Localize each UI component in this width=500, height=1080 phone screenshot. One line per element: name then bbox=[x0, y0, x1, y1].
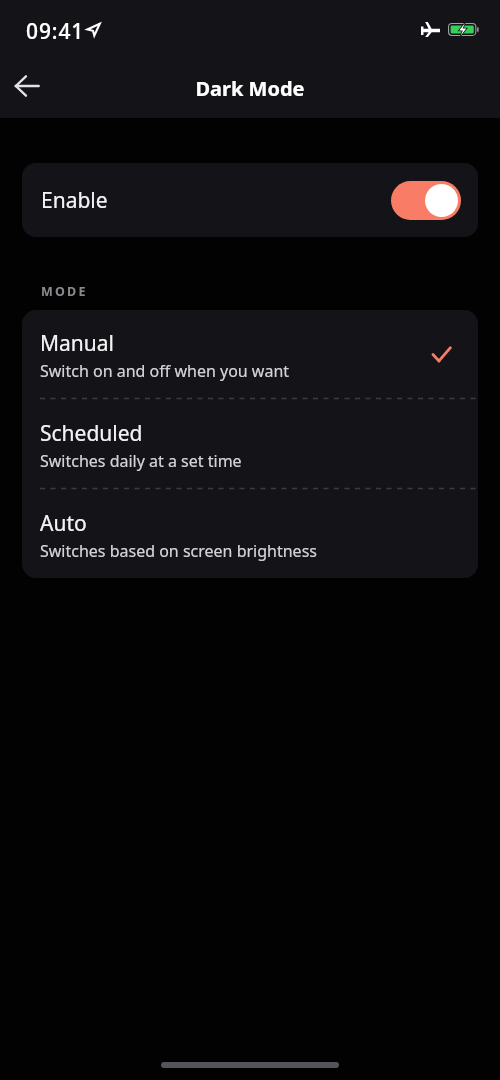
button[interactable]: Manual bbox=[22, 310, 478, 398]
staticText: Dark Mode bbox=[195, 75, 305, 102]
button[interactable]: Back bbox=[3, 62, 51, 110]
staticText: Switches based on screen brightness bbox=[40, 540, 317, 562]
staticText: 09:41 bbox=[26, 17, 85, 46]
staticText: MODE bbox=[41, 283, 88, 300]
other: Airplane mode bbox=[421, 22, 440, 37]
staticText: Auto bbox=[40, 509, 87, 538]
button[interactable]: Auto bbox=[22, 489, 478, 578]
staticText: Switches daily at a set time bbox=[40, 450, 242, 472]
staticText: Switch on and off when you want bbox=[40, 360, 290, 382]
button[interactable]: Enable dark mode bbox=[391, 181, 461, 220]
staticText: Enable bbox=[41, 186, 108, 215]
button[interactable]: Scheduled bbox=[22, 399, 478, 488]
other: Location bbox=[87, 23, 100, 36]
staticText: Scheduled bbox=[40, 419, 143, 448]
staticText: Manual bbox=[40, 329, 114, 358]
button[interactable]: Enable bbox=[22, 163, 478, 237]
other: Battery charging bbox=[448, 23, 479, 36]
